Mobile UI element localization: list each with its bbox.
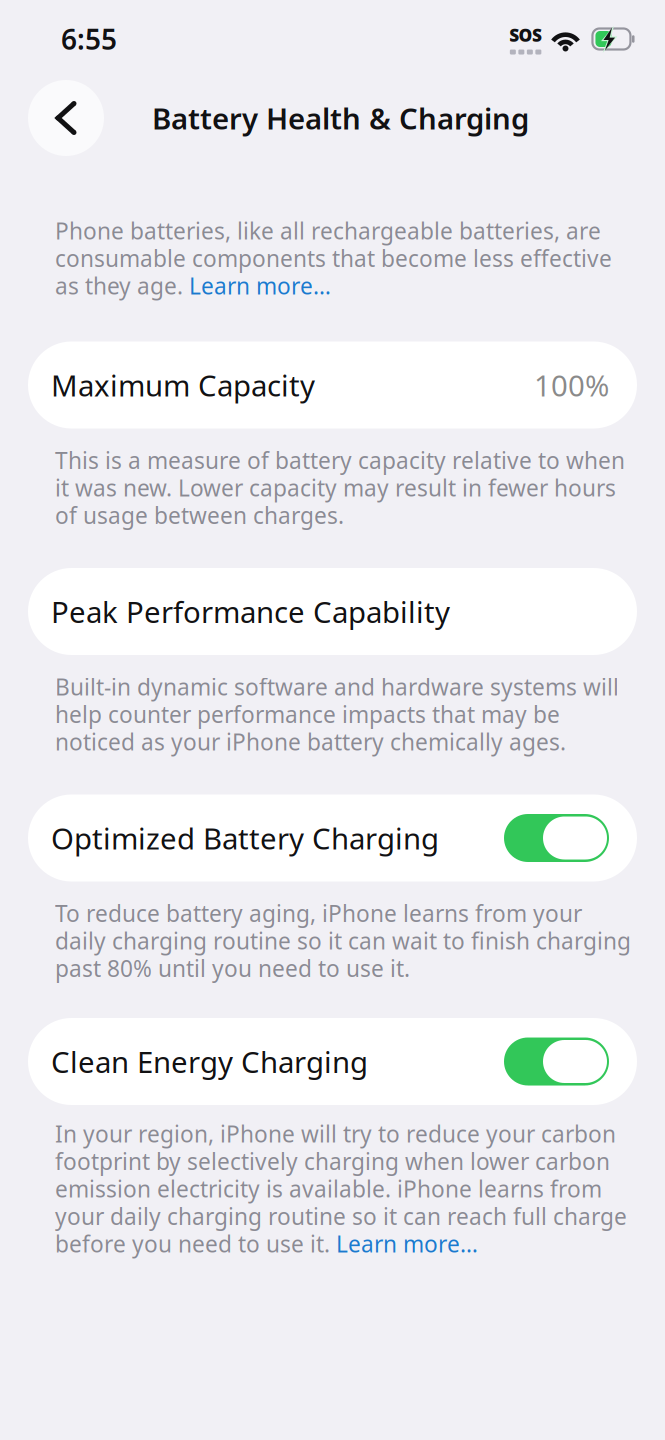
staticText: help counter performance impacts that ma… [55, 699, 560, 729]
staticText: daily charging routine so it can wait to… [55, 926, 631, 956]
staticText: Learn more… [189, 271, 331, 301]
staticText: past 80% until you need to use it. [55, 953, 410, 983]
staticText: Phone batteries, like all rechargeable b… [55, 216, 601, 246]
staticText: footprint by selectively charging when l… [55, 1146, 610, 1176]
staticText: before you need to use it. [55, 1229, 336, 1259]
button[interactable]: Optimized Battery Charging [0, 794, 665, 881]
staticText: SOS [509, 23, 542, 46]
staticText: Maximum Capacity [51, 365, 315, 404]
staticText: Built-in dynamic software and hardware s… [55, 672, 619, 702]
staticText: Learn more… [336, 1229, 478, 1259]
staticText: Peak Performance Capability [51, 592, 450, 631]
staticText: Battery Health & Charging [152, 98, 529, 137]
staticText: your daily charging routine so it can re… [55, 1201, 627, 1231]
button[interactable]: Clean Energy Charging [0, 1018, 665, 1105]
staticText: Clean Energy Charging [51, 1042, 368, 1081]
button[interactable]: Optimized Battery Charging [504, 814, 609, 862]
staticText: 6:55 [61, 20, 117, 58]
staticText: emission electricity is available. iPhon… [55, 1174, 602, 1204]
button[interactable]: Maximum Capacity [0, 341, 665, 428]
button[interactable]: Peak Performance Capability [0, 568, 665, 655]
staticText: of usage between charges. [55, 500, 344, 530]
staticText: In your region, iPhone will try to reduc… [55, 1119, 616, 1149]
button[interactable]: Back [28, 80, 104, 156]
staticText: as they age. [55, 271, 189, 301]
staticText: 100% [534, 365, 609, 404]
button[interactable]: Learn more… [336, 1229, 478, 1259]
staticText: consumable components that become less e… [55, 243, 612, 273]
staticText: To reduce battery aging, iPhone learns f… [55, 898, 582, 928]
staticText: Optimized Battery Charging [51, 818, 439, 857]
button[interactable]: Learn more… [189, 271, 331, 301]
button[interactable]: Clean Energy Charging [504, 1037, 609, 1085]
staticText: This is a measure of battery capacity re… [55, 445, 625, 475]
staticText: noticed as your iPhone battery chemicall… [55, 727, 566, 757]
staticText: it was new. Lower capacity may result in… [55, 473, 616, 503]
